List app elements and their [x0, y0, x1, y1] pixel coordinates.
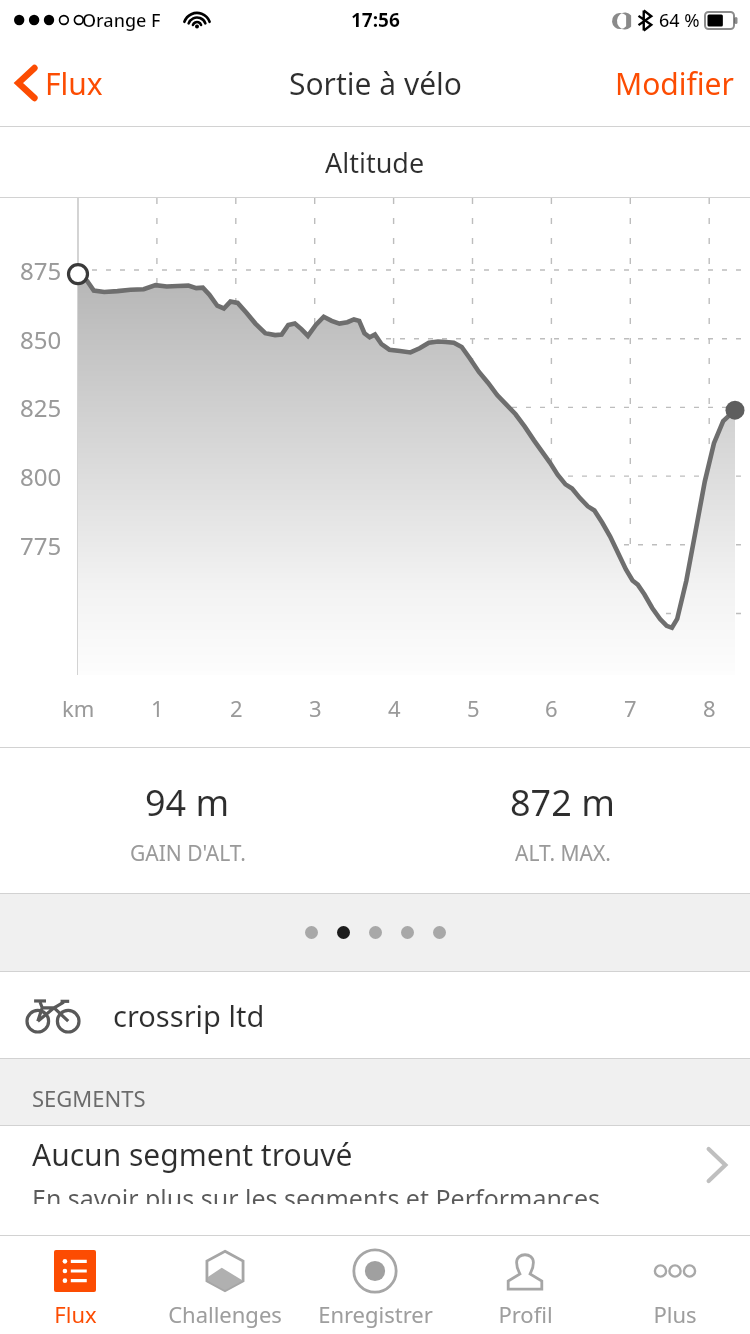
button[interactable]: Plus — [600, 1236, 750, 1334]
other: Challenges — [204, 1250, 246, 1292]
button[interactable]: Enregistrer — [300, 1236, 450, 1334]
staticText: 17:56 — [351, 7, 400, 33]
staticText: Orange F — [82, 8, 161, 33]
staticText: Altitude — [325, 144, 425, 181]
button[interactable]: Profil — [450, 1236, 600, 1334]
staticText: Enregistrer — [318, 1299, 433, 1329]
button[interactable]: crossrip ltd — [0, 972, 750, 1058]
staticText: 875 — [20, 254, 62, 287]
staticText: 1 — [151, 693, 164, 723]
staticText: 6 — [545, 693, 558, 723]
button[interactable]: 872 m — [375, 748, 750, 893]
staticText: 872 m — [510, 778, 615, 827]
staticText: 94 m — [145, 778, 230, 827]
staticText: Flux — [45, 63, 103, 104]
staticText: Modifier — [615, 63, 734, 104]
staticText: 2 — [230, 693, 243, 723]
button[interactable]: 94 m — [0, 748, 375, 893]
staticText: 825 — [20, 391, 62, 424]
other: Plus — [653, 1261, 697, 1281]
staticText: En savoir plus sur les segments et Perfo… — [32, 1181, 601, 1204]
button[interactable]: Modifier — [599, 40, 750, 126]
other: Profil — [504, 1250, 546, 1292]
other: Enregistrer — [352, 1248, 398, 1294]
staticText: SEGMENTS — [32, 1083, 146, 1113]
staticText: Challenges — [168, 1299, 282, 1329]
staticText: 775 — [20, 529, 62, 562]
other: Flux — [54, 1250, 96, 1292]
button[interactable]: Flux — [0, 40, 115, 126]
staticText: Plus — [653, 1299, 697, 1329]
staticText: km — [62, 693, 95, 723]
staticText: 3 — [309, 693, 322, 723]
staticText: 64 % — [659, 8, 700, 33]
staticText: 850 — [20, 323, 62, 356]
button[interactable]: Flux — [0, 1236, 150, 1334]
button[interactable]: Aucun segment trouvé — [0, 1126, 750, 1204]
staticText: Sortie à vélo — [289, 63, 462, 104]
staticText: 7 — [624, 693, 637, 723]
staticText: Flux — [54, 1299, 97, 1329]
staticText: GAIN D'ALT. — [130, 839, 246, 868]
staticText: 4 — [388, 693, 401, 723]
staticText: ALT. MAX. — [515, 839, 611, 868]
staticText: 5 — [467, 693, 480, 723]
staticText: Aucun segment trouvé — [32, 1134, 353, 1175]
staticText: crossrip ltd — [113, 996, 265, 1035]
staticText: Profil — [498, 1299, 553, 1329]
staticText: 800 — [20, 460, 62, 493]
button[interactable]: Challenges — [150, 1236, 300, 1334]
staticText: 8 — [703, 693, 716, 723]
